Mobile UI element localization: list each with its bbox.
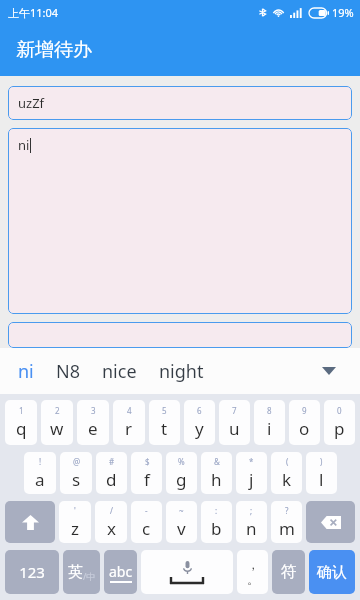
staticText: /: [110, 505, 113, 516]
button[interactable]: 确认: [309, 550, 355, 594]
button[interactable]: abc: [104, 550, 137, 594]
button[interactable]: Backspace: [306, 501, 355, 543]
staticText: uzZf: [18, 94, 45, 112]
button[interactable]: ni: [14, 353, 38, 390]
button[interactable]: 3: [77, 400, 109, 445]
staticText: 7: [232, 405, 237, 416]
button[interactable]: #: [96, 452, 127, 494]
staticText: ni: [18, 359, 34, 384]
staticText: j: [249, 468, 254, 491]
staticText: 123: [19, 562, 45, 582]
button[interactable]: %: [166, 452, 197, 494]
button[interactable]: ?: [271, 501, 302, 543]
button[interactable]: 1: [5, 400, 37, 445]
button[interactable]: ni: [8, 128, 352, 314]
button[interactable]: 8: [254, 400, 285, 445]
staticText: 5: [162, 405, 167, 416]
button[interactable]: 符: [272, 550, 305, 594]
button[interactable]: ~: [166, 501, 197, 543]
staticText: e: [88, 417, 98, 440]
staticText: p: [334, 417, 345, 440]
button[interactable]: uzZf: [8, 86, 352, 120]
button[interactable]: 英: [63, 550, 100, 594]
staticText: /中: [83, 570, 96, 582]
staticText: 上午11:04: [8, 5, 59, 20]
button[interactable]: 7: [219, 400, 250, 445]
staticText: f: [144, 468, 150, 491]
staticText: h: [211, 468, 222, 491]
staticText: ): [320, 456, 323, 467]
staticText: n: [246, 517, 257, 540]
staticText: r: [125, 417, 133, 440]
button[interactable]: 6: [184, 400, 215, 445]
button[interactable]: /: [95, 501, 127, 543]
staticText: @: [73, 456, 81, 467]
staticText: 英: [68, 563, 83, 582]
button[interactable]: !: [24, 452, 56, 494]
staticText: g: [176, 468, 187, 491]
staticText: l: [319, 468, 324, 491]
staticText: #: [109, 456, 115, 467]
staticText: 4: [127, 405, 132, 416]
button[interactable]: $: [131, 452, 162, 494]
staticText: ;: [250, 505, 253, 516]
staticText: ': [74, 505, 76, 516]
button[interactable]: N8: [52, 353, 84, 390]
button[interactable]: *: [236, 452, 267, 494]
staticText: ~: [179, 505, 184, 516]
staticText: 。: [247, 572, 259, 587]
staticText: k: [282, 468, 292, 491]
button[interactable]: 5: [149, 400, 180, 445]
staticText: d: [106, 468, 117, 491]
staticText: 9: [302, 405, 307, 416]
button[interactable]: :: [201, 501, 232, 543]
staticText: N8: [56, 359, 80, 384]
button[interactable]: [8, 322, 352, 348]
button[interactable]: ;: [236, 501, 267, 543]
staticText: v: [177, 517, 186, 540]
button[interactable]: nice: [98, 353, 141, 390]
button[interactable]: ，: [237, 550, 268, 594]
staticText: 8: [267, 405, 272, 416]
staticText: b: [211, 517, 222, 540]
staticText: o: [299, 417, 310, 440]
staticText: ?: [285, 505, 289, 516]
staticText: w: [50, 417, 64, 440]
staticText: z: [71, 517, 79, 540]
button[interactable]: &: [201, 452, 232, 494]
staticText: 6: [197, 405, 202, 416]
staticText: y: [195, 417, 204, 440]
staticText: %: [178, 456, 185, 467]
staticText: c: [142, 517, 151, 540]
button[interactable]: night: [155, 353, 208, 390]
button[interactable]: 0: [324, 400, 355, 445]
button[interactable]: Shift: [5, 501, 55, 543]
staticText: 新增待办: [16, 38, 92, 62]
button[interactable]: ': [59, 501, 91, 543]
button[interactable]: ): [306, 452, 337, 494]
button[interactable]: Space: [141, 550, 233, 594]
button[interactable]: 4: [113, 400, 145, 445]
button[interactable]: (: [271, 452, 302, 494]
button[interactable]: 9: [289, 400, 320, 445]
staticText: 1: [19, 405, 24, 416]
staticText: &: [214, 456, 220, 467]
staticText: *: [249, 456, 254, 467]
button[interactable]: 2: [41, 400, 73, 445]
staticText: 19%: [332, 5, 354, 20]
staticText: 0: [337, 405, 342, 416]
staticText: s: [72, 468, 81, 491]
button[interactable]: -: [131, 501, 162, 543]
button[interactable]: Expand candidates: [314, 356, 344, 386]
staticText: ，: [247, 557, 259, 572]
staticText: -: [145, 505, 148, 516]
staticText: nice: [102, 359, 137, 384]
button[interactable]: @: [60, 452, 92, 494]
staticText: abc: [109, 562, 133, 581]
staticText: 确认: [317, 563, 347, 582]
staticText: i: [267, 417, 272, 440]
staticText: $: [145, 456, 150, 467]
staticText: :: [215, 505, 218, 516]
staticText: x: [107, 517, 116, 540]
button[interactable]: 123: [5, 550, 59, 594]
